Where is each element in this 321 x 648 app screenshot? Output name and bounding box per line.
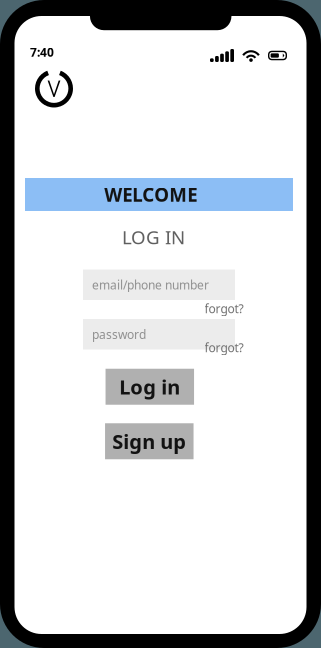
staticText: forgot? [204,300,243,316]
staticText: LOG IN [122,225,185,249]
staticText: Sign up [112,428,186,455]
staticText: password [92,326,146,342]
button[interactable]: WELCOME [25,178,293,211]
button[interactable]: forgot? [203,302,243,315]
button[interactable]: Sign up [105,423,194,459]
button[interactable]: Log in [106,369,194,405]
staticText: 7:40 [30,44,54,60]
staticText: WELCOME [104,182,197,207]
button[interactable]: Brand logo [31,67,76,109]
staticText: Log in [119,373,180,400]
staticText: forgot? [204,339,243,355]
staticText: email/phone number [92,277,209,293]
button[interactable]: forgot? [203,341,243,354]
button[interactable]: password [83,319,235,349]
button[interactable]: email/phone number [83,269,235,300]
